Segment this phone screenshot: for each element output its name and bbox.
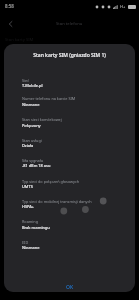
staticText: Stan telefonu [56, 21, 83, 27]
staticText: Typ sieci do mobilnej transmisji danych [22, 199, 92, 204]
staticText: Działa [22, 143, 34, 148]
staticText: -81 dBm 18 asu [22, 163, 51, 168]
staticText: EID [22, 240, 29, 245]
staticText: Roaming [22, 219, 38, 224]
staticText: UMTS [22, 184, 33, 189]
staticText: Nieznane [22, 102, 40, 107]
staticText: OK [66, 284, 74, 291]
staticText: Nieznane [22, 245, 40, 250]
staticText: Sieć [22, 78, 30, 83]
staticText: Stan karty SIM [5, 37, 34, 43]
staticText: Typ sieci do połączeń głosowych [22, 179, 80, 184]
staticText: T-Mobile.pl [22, 83, 43, 88]
staticText: Stan karty SIM (gniazdo SIM 1) [4, 52, 135, 59]
staticText: Stan usługi [22, 138, 42, 143]
button[interactable]: OK [58, 282, 82, 292]
staticText: Stan sieci komórkowej [22, 117, 62, 122]
staticText: Brak roamingu [22, 225, 50, 230]
staticText: Siła sygnału [22, 158, 44, 163]
button[interactable]: Back [2, 15, 20, 33]
staticText: 8:58 [5, 3, 14, 9]
staticText: HSPA+ [22, 204, 35, 209]
staticText: H+ [120, 4, 126, 9]
staticText: Połączony [22, 123, 41, 128]
staticText: Numer telefonu na karcie SIM [22, 96, 76, 101]
